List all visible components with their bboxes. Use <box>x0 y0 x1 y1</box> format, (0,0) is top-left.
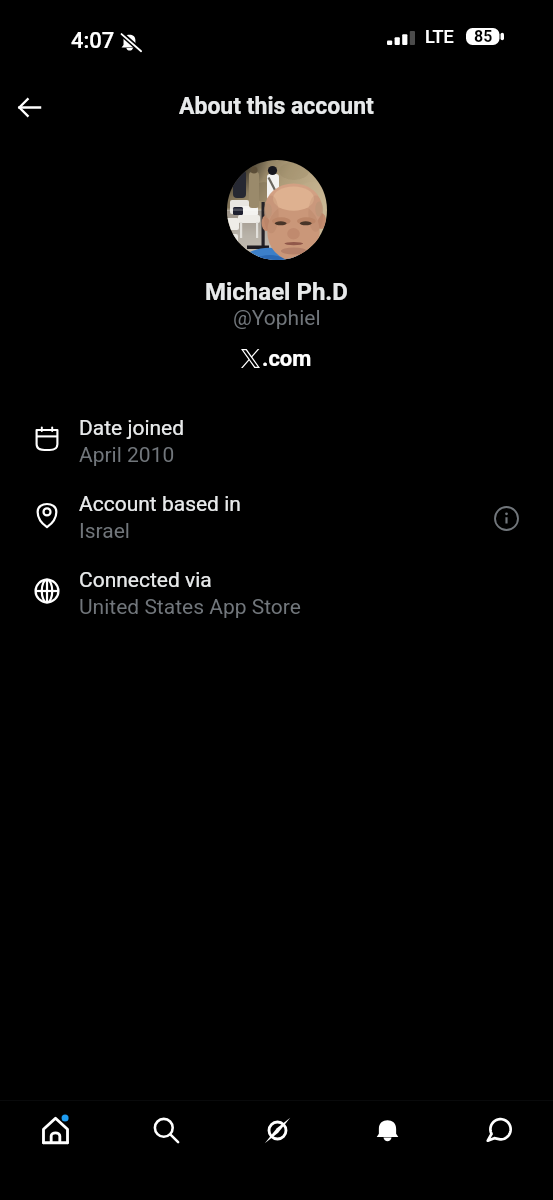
staticText: Connected via <box>79 568 212 593</box>
button[interactable]: Connected via <box>0 556 553 632</box>
staticText: April 2010 <box>79 443 175 468</box>
button[interactable]: Notifications <box>358 1101 416 1159</box>
button[interactable]: Date joined <box>0 404 553 480</box>
staticText: .com <box>262 346 312 372</box>
button[interactable]: Home <box>26 1101 84 1159</box>
button[interactable]: Grok <box>248 1101 306 1159</box>
staticText: Israel <box>79 519 130 544</box>
button[interactable]: Search <box>137 1101 195 1159</box>
button[interactable]: Account based in <box>0 480 553 556</box>
staticText: 4:07 <box>71 28 115 54</box>
button[interactable]: Messages <box>469 1101 527 1159</box>
button[interactable]: Back <box>6 84 52 130</box>
staticText: About this account <box>179 93 374 120</box>
staticText: Account based in <box>79 492 241 517</box>
staticText: LTE <box>425 26 454 47</box>
staticText: Date joined <box>79 416 185 441</box>
staticText: 85 <box>474 27 493 46</box>
staticText: United States App Store <box>79 595 301 620</box>
button[interactable]: More info <box>487 499 525 537</box>
staticText: @Yophiel <box>233 306 321 331</box>
staticText: Michael Ph.D <box>205 278 348 306</box>
